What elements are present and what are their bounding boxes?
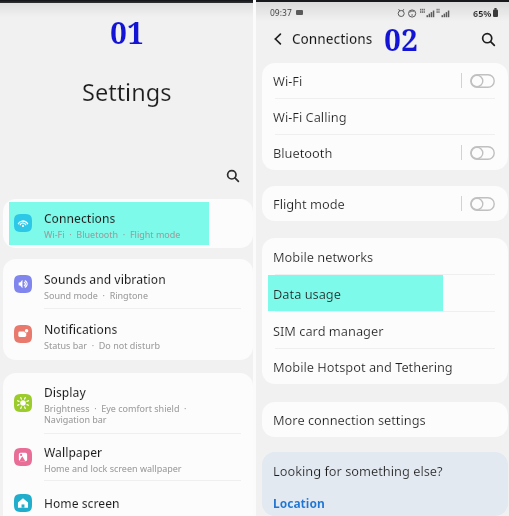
button[interactable]: Search	[220, 163, 246, 189]
staticText: SIM card manager	[273, 322, 384, 339]
button[interactable]: More connection settings	[262, 402, 508, 437]
button[interactable]: Mobile Hotspot and Tethering	[262, 349, 508, 384]
staticText: 09:37	[270, 7, 292, 19]
staticText: Display	[44, 384, 86, 400]
staticText: Brightness · Eye comfort shield · Naviga…	[44, 402, 187, 426]
button[interactable]: Display	[3, 373, 253, 433]
button[interactable]: Home screen	[3, 481, 253, 516]
button[interactable]: Notifications	[3, 309, 253, 359]
staticText: Mobile networks	[273, 248, 374, 265]
button[interactable]: Location	[262, 489, 508, 516]
button[interactable]: Data usage	[262, 275, 508, 311]
button[interactable]: Back	[267, 28, 289, 50]
button[interactable]: Mobile networks	[262, 238, 508, 274]
button[interactable]: Connections	[3, 199, 253, 247]
staticText: Data usage	[273, 285, 341, 302]
staticText: 01	[110, 12, 144, 53]
staticText: Flight mode	[273, 195, 345, 212]
staticText: Home and lock screen wallpaper	[44, 462, 182, 474]
staticText: Location	[273, 495, 325, 511]
staticText: Status bar · Do not disturb	[44, 339, 160, 351]
staticText: 65%	[473, 7, 492, 19]
staticText: Looking for something else?	[273, 462, 443, 479]
staticText: Wallpaper	[44, 444, 103, 460]
staticText: Home screen	[44, 495, 120, 511]
staticText: Sound mode · Ringtone	[44, 289, 148, 301]
staticText: Bluetooth	[273, 144, 333, 161]
staticText: Settings	[82, 76, 172, 108]
button[interactable]: SIM card manager	[262, 312, 508, 348]
staticText: Connections	[292, 30, 373, 48]
staticText: 02	[384, 19, 418, 60]
staticText: Notifications	[44, 321, 118, 337]
button[interactable]: Wi-Fi	[262, 63, 508, 98]
staticText: Connections	[44, 210, 116, 226]
staticText: Wi-Fi · Bluetooth · Flight mode	[44, 228, 181, 240]
staticText: Mobile Hotspot and Tethering	[273, 358, 453, 375]
button[interactable]: Bluetooth	[262, 135, 508, 170]
staticText: Sounds and vibration	[44, 271, 166, 287]
button[interactable]: Wi-Fi Calling	[262, 99, 508, 134]
staticText: Wi-Fi	[273, 72, 303, 89]
button[interactable]: Sounds and vibration	[3, 259, 253, 308]
staticText: Wi-Fi Calling	[273, 108, 347, 125]
button[interactable]: Wallpaper	[3, 434, 253, 480]
button[interactable]: Flight mode	[262, 186, 508, 221]
button[interactable]: Search	[476, 27, 500, 51]
staticText: More connection settings	[273, 411, 426, 428]
